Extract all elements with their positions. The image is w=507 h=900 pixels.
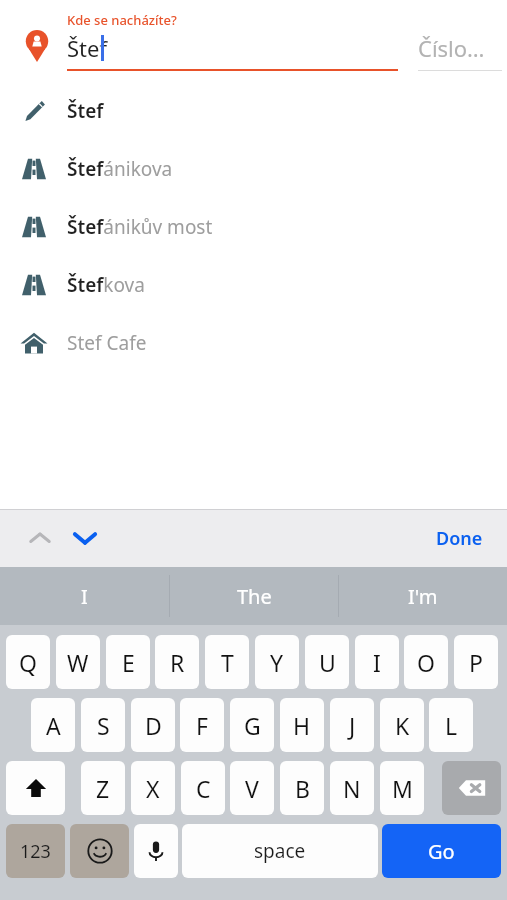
button[interactable]: G	[230, 698, 274, 752]
button[interactable]: Z	[81, 761, 125, 815]
staticText: Y	[270, 647, 284, 678]
staticText: B	[295, 773, 310, 804]
button[interactable]: Go	[382, 824, 501, 878]
button[interactable]: Štefánikův most	[0, 198, 507, 256]
staticText: R	[170, 647, 185, 678]
staticText: Z	[96, 773, 110, 804]
staticText: L	[445, 710, 458, 741]
button[interactable]: R	[155, 635, 199, 689]
button[interactable]: Shift	[6, 761, 65, 815]
staticText: X	[146, 773, 160, 804]
staticText: 123	[20, 839, 51, 864]
staticText: H	[293, 710, 311, 741]
staticText: A	[46, 710, 61, 741]
button[interactable]: Dictate	[134, 824, 178, 878]
button[interactable]: N	[330, 761, 374, 815]
button[interactable]: I	[0, 567, 169, 625]
staticText: O	[417, 647, 435, 678]
staticText: space	[254, 838, 306, 864]
staticText: G	[244, 710, 261, 741]
button[interactable]: J	[330, 698, 374, 752]
staticText: W	[67, 647, 89, 678]
button[interactable]: H	[280, 698, 324, 752]
button[interactable]: L	[429, 698, 473, 752]
staticText: Štefkova	[67, 272, 145, 298]
staticText: Stef Cafe	[67, 330, 147, 356]
button[interactable]: The	[170, 567, 338, 625]
staticText: Štefánikův most	[67, 214, 213, 240]
staticText: U	[319, 647, 336, 678]
button[interactable]: B	[280, 761, 324, 815]
button[interactable]: Štefánikova	[0, 140, 507, 198]
button[interactable]: M	[380, 761, 424, 815]
button[interactable]: O	[404, 635, 448, 689]
staticText: P	[469, 647, 483, 678]
staticText: Done	[436, 526, 483, 551]
staticText: I	[81, 583, 88, 610]
staticText: The	[237, 583, 272, 610]
button[interactable]: K	[380, 698, 424, 752]
staticText: Štef	[67, 33, 107, 63]
button[interactable]: Číslo…	[418, 28, 502, 72]
button[interactable]: Štef	[0, 82, 507, 140]
button[interactable]: W	[56, 635, 100, 689]
button[interactable]: Štef	[67, 28, 398, 72]
button[interactable]: X	[131, 761, 175, 815]
staticText: Štefánikova	[67, 156, 173, 182]
staticText: M	[392, 773, 413, 804]
staticText: C	[196, 773, 211, 804]
button[interactable]: P	[454, 635, 498, 689]
staticText: J	[349, 710, 356, 741]
button[interactable]: Štefkova	[0, 256, 507, 314]
staticText: V	[245, 773, 259, 804]
button[interactable]: Y	[255, 635, 299, 689]
button[interactable]: 123	[6, 824, 65, 878]
button[interactable]: T	[205, 635, 249, 689]
button[interactable]: Previous field	[20, 518, 60, 558]
button[interactable]: U	[305, 635, 349, 689]
button[interactable]: Use current location	[20, 29, 54, 63]
button[interactable]: S	[81, 698, 125, 752]
staticText: I	[373, 647, 381, 678]
button[interactable]: Done	[436, 526, 483, 551]
staticText: E	[122, 647, 135, 678]
button[interactable]: I	[355, 635, 399, 689]
staticText: I'm	[408, 583, 438, 610]
staticText: S	[97, 710, 110, 741]
button[interactable]: C	[181, 761, 225, 815]
button[interactable]: Stef Cafe	[0, 314, 507, 372]
button[interactable]: E	[106, 635, 150, 689]
button[interactable]: F	[180, 698, 224, 752]
staticText: Štef	[67, 98, 104, 124]
button[interactable]: Next field	[65, 518, 105, 558]
button[interactable]: Emoji	[70, 824, 129, 878]
staticText: Go	[428, 838, 455, 865]
staticText: K	[395, 710, 410, 741]
button[interactable]: Q	[6, 635, 50, 689]
button[interactable]: space	[182, 824, 378, 878]
button[interactable]: A	[31, 698, 75, 752]
staticText: N	[343, 773, 361, 804]
staticText: T	[221, 647, 234, 678]
button[interactable]: D	[131, 698, 175, 752]
staticText: Číslo…	[418, 33, 485, 63]
staticText: Kde se nacházíte?	[67, 11, 177, 29]
button[interactable]: I'm	[339, 567, 507, 625]
staticText: Q	[19, 647, 37, 678]
staticText: F	[196, 710, 208, 741]
button[interactable]: V	[230, 761, 274, 815]
button[interactable]: Backspace	[442, 761, 501, 815]
staticText: D	[145, 710, 162, 741]
